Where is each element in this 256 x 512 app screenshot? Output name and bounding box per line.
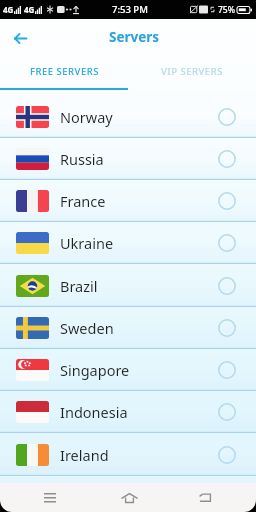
button[interactable]: Home [117, 483, 141, 512]
button[interactable]: FREE SERVERS [0, 57, 128, 90]
button[interactable]: Norway [0, 96, 256, 138]
staticText: 4G [24, 4, 35, 15]
staticText: VIP SERVERS [161, 65, 223, 78]
button[interactable]: Sweden [0, 307, 256, 349]
staticText: Russia [60, 149, 104, 169]
button[interactable]: Back [193, 483, 217, 512]
button[interactable]: Ireland [0, 433, 256, 476]
button[interactable]: Singapore [0, 349, 256, 391]
button[interactable]: Ukraine [0, 222, 256, 264]
staticText: Ireland [60, 445, 109, 465]
button[interactable]: Brazil [0, 264, 256, 307]
button[interactable]: Back [8, 26, 32, 50]
button[interactable]: Indonesia [0, 391, 256, 433]
staticText: 7:53 PM [112, 3, 148, 16]
button[interactable]: Recent apps [38, 483, 62, 512]
button[interactable]: VIP SERVERS [128, 57, 256, 90]
button[interactable]: Russia [0, 138, 256, 180]
staticText: Indonesia [60, 402, 128, 422]
staticText: 75% [218, 4, 235, 16]
staticText: Norway [60, 107, 113, 127]
staticText: France [60, 191, 106, 211]
staticText: Singapore [60, 360, 130, 380]
button[interactable]: France [0, 180, 256, 222]
staticText: 4G [3, 4, 14, 15]
staticText: Servers [109, 28, 160, 46]
staticText: Brazil [60, 276, 98, 296]
staticText: Ukraine [60, 233, 114, 253]
staticText: Sweden [60, 318, 114, 338]
staticText: FREE SERVERS [30, 65, 99, 78]
